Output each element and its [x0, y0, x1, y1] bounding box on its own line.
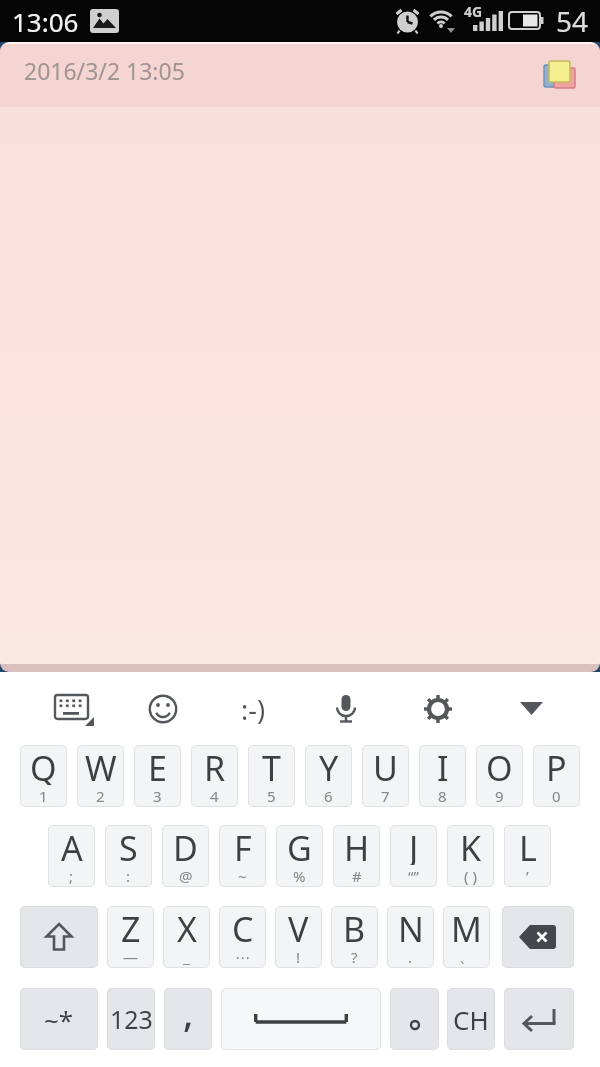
staticText: ’ [526, 866, 529, 886]
button[interactable]: I [419, 745, 466, 807]
staticText: 4 [210, 786, 219, 806]
button[interactable]: X [163, 906, 210, 968]
button[interactable] [20, 906, 98, 968]
staticText: H [344, 825, 370, 865]
button[interactable]: O [476, 745, 523, 807]
button[interactable]: A [48, 825, 95, 887]
button[interactable] [544, 61, 576, 91]
button[interactable]: P [533, 745, 580, 807]
staticText: W [85, 745, 117, 785]
button[interactable]: , [164, 988, 212, 1050]
staticText: Q [30, 745, 57, 785]
staticText: O [486, 745, 513, 785]
button[interactable] [143, 690, 183, 728]
staticText: P [546, 745, 567, 785]
staticText: 7 [381, 786, 390, 806]
button[interactable]: U [362, 745, 409, 807]
button[interactable]: R [191, 745, 238, 807]
button[interactable]: V [275, 906, 322, 968]
staticText: :-) [241, 691, 266, 728]
staticText: _ [183, 947, 190, 967]
button[interactable]: 123 [107, 988, 155, 1050]
staticText: 3 [153, 786, 162, 806]
staticText: M [451, 906, 482, 946]
button[interactable]: F [219, 825, 266, 887]
staticText: 0 [552, 786, 561, 806]
staticText: 9 [495, 786, 504, 806]
button[interactable] [52, 690, 96, 728]
button[interactable]: W [77, 745, 124, 807]
button[interactable] [512, 692, 552, 726]
button[interactable]: Z [107, 906, 154, 968]
staticText: T [262, 745, 281, 785]
staticText: ~ [238, 866, 247, 886]
button[interactable]: :-) [228, 690, 278, 728]
button[interactable]: C [219, 906, 266, 968]
staticText: — [123, 947, 139, 967]
staticText: . [408, 947, 413, 967]
staticText: B [343, 906, 366, 946]
button[interactable]: Q [20, 745, 67, 807]
button[interactable] [390, 988, 439, 1050]
button[interactable]: J [390, 825, 437, 887]
staticText: 2 [96, 786, 105, 806]
staticText: S [119, 825, 138, 865]
button[interactable]: L [504, 825, 551, 887]
button[interactable]: G [276, 825, 323, 887]
button[interactable]: Y [305, 745, 352, 807]
staticText: 5 [267, 786, 276, 806]
staticText: D [173, 825, 198, 865]
button[interactable] [418, 690, 458, 728]
staticText: K [460, 825, 482, 865]
button[interactable]: E [134, 745, 181, 807]
staticText: ( ) [464, 866, 477, 886]
staticText: 6 [324, 786, 333, 806]
button[interactable]: CH [447, 988, 495, 1050]
staticText: % [293, 866, 306, 886]
staticText: # [352, 866, 362, 886]
staticText: ; [69, 866, 74, 886]
button[interactable]: T [248, 745, 295, 807]
button[interactable]: M [443, 906, 490, 968]
staticText: 123 [110, 1002, 153, 1036]
staticText: 2016/3/2 13:05 [24, 55, 185, 86]
staticText: Z [121, 906, 141, 946]
staticText: 、 [459, 948, 474, 967]
staticText: ? [351, 947, 358, 967]
staticText: ! [296, 947, 301, 967]
staticText: “” [408, 866, 419, 886]
button[interactable] [502, 906, 574, 968]
staticText: , [183, 986, 194, 1038]
staticText: : [126, 866, 131, 886]
staticText: X [177, 906, 197, 946]
staticText: N [398, 906, 424, 946]
button[interactable] [504, 988, 574, 1050]
button[interactable]: B [331, 906, 378, 968]
staticText: A [61, 825, 83, 865]
button[interactable]: H [333, 825, 380, 887]
button[interactable]: S [105, 825, 152, 887]
staticText: 1 [39, 786, 48, 806]
button[interactable]: D [162, 825, 209, 887]
staticText: 4G [464, 2, 483, 20]
staticText: R [204, 745, 226, 785]
staticText: V [288, 906, 309, 946]
staticText: @ [179, 866, 193, 886]
staticText: G [287, 825, 312, 865]
staticText: CH [453, 1002, 489, 1037]
staticText: I [437, 745, 449, 785]
staticText: F [234, 825, 252, 865]
button[interactable] [221, 988, 381, 1050]
staticText: L [519, 825, 537, 865]
button[interactable]: ~* [20, 988, 98, 1050]
staticText: ⋯ [235, 949, 250, 966]
staticText: 13:06 [12, 4, 79, 39]
button[interactable]: N [387, 906, 434, 968]
staticText: 8 [438, 786, 447, 806]
button[interactable]: K [447, 825, 494, 887]
button[interactable] [326, 688, 366, 730]
staticText: U [373, 745, 398, 785]
staticText: ~* [44, 1002, 74, 1037]
staticText: C [232, 906, 254, 946]
